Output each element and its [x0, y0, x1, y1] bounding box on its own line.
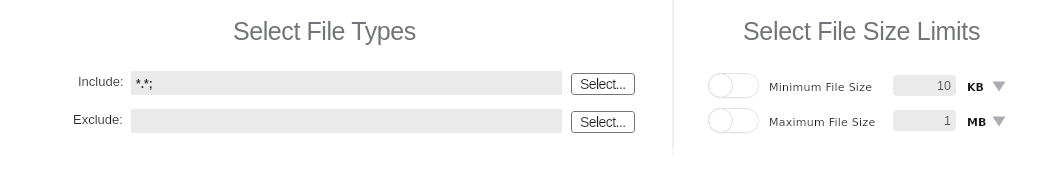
staticText: Select...: [580, 114, 626, 130]
staticText: *.*;: [136, 77, 153, 90]
staticText: Include:: [78, 74, 124, 89]
staticText: Maximum File Size: [769, 116, 876, 129]
button[interactable]: Select...: [571, 73, 635, 95]
staticText: Select...: [580, 76, 626, 92]
staticText: KB: [967, 81, 984, 94]
staticText: Select File Types: [233, 17, 416, 45]
staticText: 1: [944, 114, 951, 128]
button[interactable]: Select...: [571, 111, 635, 133]
button[interactable]: 1: [893, 110, 956, 131]
button[interactable]: 10: [893, 75, 956, 96]
button[interactable]: Enable Minimum File Size: [708, 73, 759, 98]
staticText: Minimum File Size: [769, 81, 873, 94]
staticText: 10: [937, 79, 951, 93]
staticText: MB: [967, 116, 987, 129]
staticText: Select File Size Limits: [743, 17, 981, 45]
button[interactable]: *.*;: [131, 71, 562, 95]
staticText: Exclude:: [73, 112, 123, 127]
button[interactable]: Enable Maximum File Size: [708, 108, 759, 133]
button[interactable]: Choose unit for Maximum File Size: [992, 114, 1007, 129]
button[interactable]: Choose unit for Minimum File Size: [992, 79, 1007, 94]
